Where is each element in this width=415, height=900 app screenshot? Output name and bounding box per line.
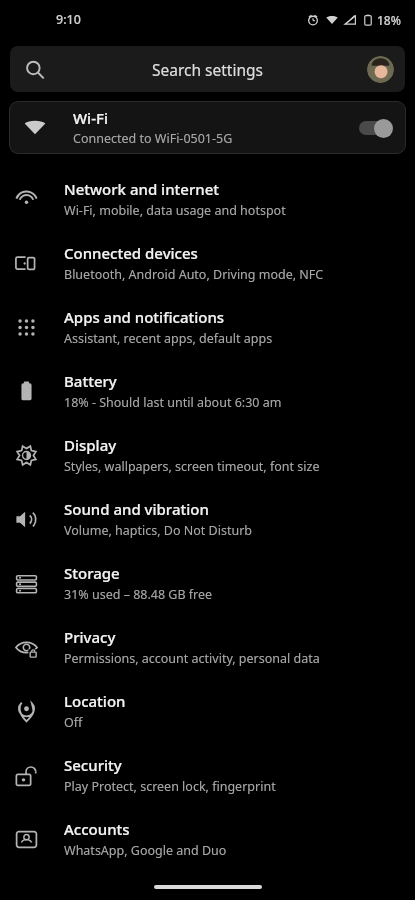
staticText: Location	[64, 691, 126, 711]
staticText: Connected to WiFi-0501-5G	[73, 130, 233, 147]
staticText: Volume, haptics, Do Not Disturb	[64, 522, 253, 539]
button[interactable]: Storage	[0, 551, 415, 615]
staticText: Privacy	[64, 627, 116, 647]
staticText: Search settings	[152, 59, 263, 80]
button[interactable]: Wi-Fi toggle	[357, 117, 393, 139]
button[interactable]: Network and internet	[0, 167, 415, 231]
staticText: Storage	[64, 563, 120, 583]
staticText: WhatsApp, Google and Duo	[64, 842, 227, 859]
staticText: Wi-Fi, mobile, data usage and hotspot	[64, 202, 286, 219]
other: Search	[25, 60, 44, 79]
button[interactable]: Security	[0, 743, 415, 807]
staticText: Sound and vibration	[64, 499, 209, 519]
staticText: Bluetooth, Android Auto, Driving mode, N…	[64, 266, 324, 283]
button[interactable]: Battery	[0, 359, 415, 423]
staticText: Permissions, account activity, personal …	[64, 650, 320, 667]
staticText: Accounts	[64, 819, 130, 839]
staticText: Play Protect, screen lock, fingerprint	[64, 778, 276, 795]
staticText: Styles, wallpapers, screen timeout, font…	[64, 458, 320, 475]
staticText: Assistant, recent apps, default apps	[64, 330, 273, 347]
staticText: Network and internet	[64, 179, 219, 199]
button[interactable]: Search	[10, 46, 405, 92]
staticText: Apps and notifications	[64, 307, 225, 327]
staticText: Off	[64, 714, 83, 731]
staticText: Display	[64, 435, 117, 455]
staticText: 18% - Should last until about 6:30 am	[64, 394, 282, 411]
button[interactable]: Location	[0, 679, 415, 743]
staticText: 9:10	[56, 11, 81, 28]
button[interactable]: Wi-Fi	[9, 101, 406, 154]
button[interactable]: Accounts	[0, 807, 415, 871]
staticText: Wi-Fi	[73, 108, 108, 128]
staticText: Connected devices	[64, 243, 198, 263]
staticText: Security	[64, 755, 122, 775]
button[interactable]: Connected devices	[0, 231, 415, 295]
staticText: 31% used – 88.48 GB free	[64, 586, 213, 603]
staticText: Battery	[64, 371, 117, 391]
button[interactable]: Privacy	[0, 615, 415, 679]
button[interactable]: Apps and notifications	[0, 295, 415, 359]
staticText: 18%	[377, 12, 401, 28]
button[interactable]: Account	[367, 56, 394, 83]
button[interactable]: Display	[0, 423, 415, 487]
button[interactable]: Sound and vibration	[0, 487, 415, 551]
